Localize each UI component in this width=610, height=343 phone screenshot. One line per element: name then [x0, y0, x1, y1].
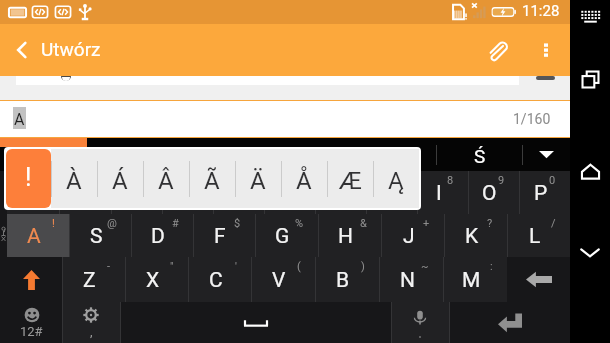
button[interactable]: Home — [570, 151, 610, 191]
button[interactable]: H — [318, 214, 381, 257]
button[interactable]: S — [69, 214, 131, 257]
button[interactable]: Keyboard — [570, 0, 610, 32]
staticText: B — [336, 268, 350, 293]
button[interactable]: T — [213, 171, 264, 214]
staticText: - — [107, 260, 111, 273]
button[interactable]: Voice input — [391, 302, 449, 343]
staticText: 12# — [20, 324, 43, 339]
staticText: Ś — [474, 145, 486, 167]
button[interactable]: M — [443, 257, 507, 302]
staticText: N — [400, 268, 415, 293]
button[interactable]: I — [417, 171, 468, 214]
staticText: D — [151, 224, 165, 249]
staticText: / — [551, 217, 556, 230]
staticText: ~ — [421, 260, 429, 273]
button[interactable]: C — [188, 257, 251, 302]
staticText: : — [490, 260, 493, 273]
button[interactable]: X — [125, 257, 188, 302]
staticText: + — [423, 217, 430, 230]
button[interactable]: Back — [0, 24, 44, 76]
button[interactable]: E — [111, 171, 162, 214]
button[interactable]: More options — [522, 24, 570, 76]
button[interactable]: Hide keyboard — [570, 233, 610, 273]
button[interactable]: Á — [97, 149, 143, 208]
staticText: I — [385, 181, 391, 206]
staticText: Z — [83, 268, 96, 293]
button[interactable]: R — [162, 171, 213, 214]
staticText: Å — [296, 167, 312, 195]
button[interactable]: Y — [264, 171, 315, 214]
button[interactable]: Æ — [327, 149, 373, 208]
button[interactable]: O — [468, 171, 519, 214]
staticText: A — [27, 224, 41, 249]
button[interactable]: L — [507, 214, 570, 257]
button[interactable]: U — [315, 171, 366, 214]
button[interactable]: Emoji and symbols — [0, 302, 62, 343]
button[interactable]: N — [379, 257, 443, 302]
staticText: 6 — [294, 174, 301, 187]
button[interactable]: Â — [143, 149, 189, 208]
button[interactable]: Z — [62, 257, 125, 302]
button[interactable]: À — [51, 149, 97, 208]
staticText: L — [529, 224, 541, 249]
button[interactable]: A — [7, 214, 69, 257]
staticText: S — [90, 224, 103, 249]
staticText: ' — [235, 260, 237, 273]
staticText: ) — [361, 260, 365, 273]
staticText: F — [214, 224, 226, 249]
staticText: P — [534, 181, 548, 206]
button[interactable]: I — [366, 171, 417, 214]
button[interactable]: P — [519, 171, 570, 214]
button[interactable]: K — [444, 214, 507, 257]
staticText: X — [146, 268, 160, 293]
staticText: $ — [234, 217, 241, 230]
staticText: ? — [487, 217, 493, 230]
button[interactable]: Q — [7, 171, 59, 214]
button[interactable]: G — [255, 214, 318, 257]
button[interactable]: Ä — [235, 149, 281, 208]
staticText: 8 — [447, 174, 454, 187]
button[interactable]: Ą — [373, 149, 419, 208]
button[interactable]: Ã — [189, 149, 235, 208]
staticText: 11:28 — [522, 2, 560, 20]
button[interactable]: Space — [120, 302, 391, 343]
button[interactable]: Ś — [437, 138, 522, 171]
button[interactable]: V — [251, 257, 315, 302]
staticText: 1/160 — [513, 111, 551, 127]
staticText: % — [295, 217, 304, 230]
button[interactable]: ! — [6, 149, 51, 208]
staticText: Á — [112, 167, 128, 195]
staticText: À — [66, 167, 82, 195]
button[interactable]: More suggestions — [523, 138, 570, 171]
staticText: O — [482, 181, 497, 206]
button[interactable]: Shift — [0, 257, 62, 302]
staticText: & — [360, 217, 367, 230]
button[interactable]: Attach — [472, 24, 522, 76]
button[interactable]: J — [381, 214, 444, 257]
staticText: 0 — [549, 174, 556, 187]
button[interactable]: B — [315, 257, 379, 302]
staticText: C — [209, 268, 223, 293]
button[interactable]: Backspace — [507, 257, 570, 302]
staticText: H — [338, 224, 353, 249]
button[interactable]: Å — [281, 149, 327, 208]
staticText: J — [403, 224, 415, 249]
staticText: 7 — [345, 174, 352, 187]
staticText: ! — [25, 163, 32, 192]
staticText: Ã — [204, 167, 220, 195]
staticText: ! — [52, 217, 55, 230]
staticText: , — [90, 324, 93, 339]
button[interactable]: Enter — [449, 302, 570, 343]
button[interactable]: Recent apps — [570, 59, 610, 99]
staticText: Y — [279, 181, 292, 206]
staticText: 8 — [396, 174, 403, 187]
staticText: I — [436, 181, 442, 206]
staticText: M — [462, 268, 481, 293]
button[interactable]: F — [193, 214, 255, 257]
button[interactable]: Settings — [62, 302, 120, 343]
button[interactable]: W — [59, 171, 111, 214]
button[interactable]: D — [131, 214, 193, 257]
